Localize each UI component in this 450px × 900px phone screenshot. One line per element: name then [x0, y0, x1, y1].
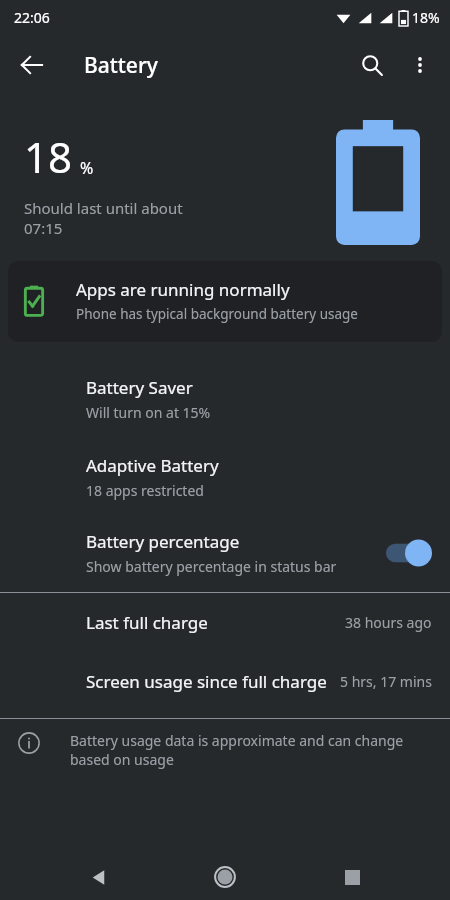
- staticText: Apps are running normally: [76, 278, 290, 301]
- staticText: Battery: [84, 51, 158, 80]
- button[interactable]: Apps are running normally: [8, 261, 442, 342]
- staticText: 22:06: [14, 8, 50, 27]
- staticText: Phone has typical background battery usa…: [76, 305, 358, 323]
- button[interactable]: Screen usage since full charge: [0, 652, 450, 711]
- button[interactable]: Last full charge: [0, 593, 450, 652]
- staticText: 5 hrs, 17 mins: [340, 672, 432, 691]
- button[interactable]: More options: [396, 41, 444, 89]
- staticText: 38 hours ago: [345, 613, 432, 632]
- staticText: Last full charge: [86, 611, 208, 634]
- staticText: Will turn on at 15%: [86, 403, 211, 422]
- button[interactable]: Back: [71, 854, 127, 900]
- button[interactable]: Battery Saver: [0, 360, 450, 438]
- staticText: Screen usage since full charge: [86, 670, 327, 693]
- staticText: 18 apps restricted: [86, 481, 204, 500]
- staticText: Show battery percentage in status bar: [86, 557, 337, 576]
- button[interactable]: Battery percentage toggle: [386, 538, 432, 568]
- staticText: %: [80, 157, 94, 179]
- button[interactable]: Adaptive Battery: [0, 438, 450, 516]
- button[interactable]: Battery percentage: [0, 516, 450, 590]
- staticText: Battery percentage: [86, 530, 240, 553]
- staticText: 18: [24, 128, 73, 185]
- button[interactable]: Recent apps: [324, 854, 380, 900]
- button[interactable]: Back: [8, 41, 56, 89]
- button[interactable]: Search: [348, 41, 396, 89]
- staticText: Should last until about 07:15: [24, 198, 204, 238]
- staticText: Adaptive Battery: [86, 454, 219, 477]
- staticText: Battery Saver: [86, 376, 193, 399]
- staticText: Battery usage data is approximate and ca…: [70, 731, 410, 769]
- staticText: 18%: [412, 8, 440, 27]
- button[interactable]: Home: [197, 854, 253, 900]
